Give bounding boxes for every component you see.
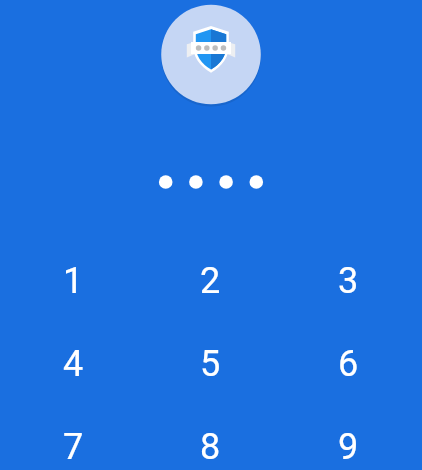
button[interactable]: 3 <box>280 239 417 322</box>
button[interactable]: 9 <box>280 405 417 470</box>
button[interactable]: 4 <box>5 322 142 405</box>
button[interactable]: 7 <box>5 405 142 470</box>
button[interactable]: 5 <box>142 322 279 405</box>
button[interactable]: 8 <box>142 405 279 470</box>
staticText: 6 <box>338 343 359 385</box>
staticText: 1 <box>63 260 84 302</box>
staticText: 7 <box>63 426 84 468</box>
staticText: 9 <box>338 426 359 468</box>
staticText: 8 <box>200 426 221 468</box>
staticText: 2 <box>200 260 221 302</box>
staticText: 5 <box>200 343 221 385</box>
button[interactable]: 6 <box>280 322 417 405</box>
staticText: 4 <box>63 343 84 385</box>
button[interactable]: 1 <box>5 239 142 322</box>
staticText: 3 <box>338 260 359 302</box>
button[interactable]: 2 <box>142 239 279 322</box>
